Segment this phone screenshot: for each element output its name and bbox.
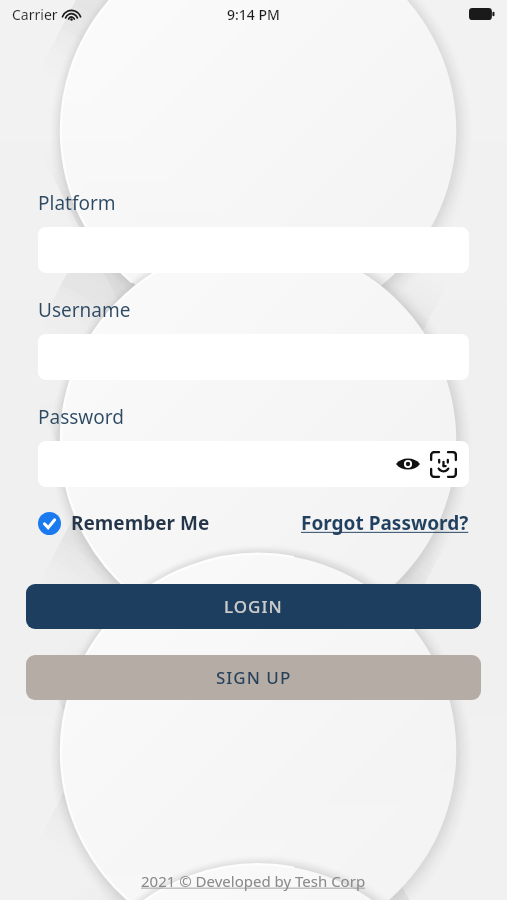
button[interactable]: Face ID: [427, 448, 459, 480]
staticText: SIGN UP: [216, 666, 292, 689]
button[interactable]: Show password: [38, 441, 469, 487]
staticText: 2021 © Developed by Tesh Corp: [141, 871, 366, 891]
button[interactable]: Show password: [393, 449, 423, 479]
staticText: LOGIN: [224, 595, 283, 618]
button[interactable]: 2021 © Developed by Tesh Corp: [141, 871, 366, 891]
button[interactable]: Forgot Password?: [301, 510, 469, 536]
staticText: Forgot Password?: [301, 510, 469, 536]
staticText: Password: [38, 404, 124, 430]
button[interactable]: SIGN UP: [26, 655, 481, 700]
staticText: Username: [38, 297, 131, 323]
staticText: Remember Me: [71, 510, 210, 536]
staticText: Carrier: [12, 5, 58, 24]
button[interactable]: LOGIN: [26, 584, 481, 629]
staticText: 9:14 PM: [227, 5, 280, 24]
staticText: Platform: [38, 190, 116, 216]
button[interactable]: Remember Me: [38, 510, 210, 536]
